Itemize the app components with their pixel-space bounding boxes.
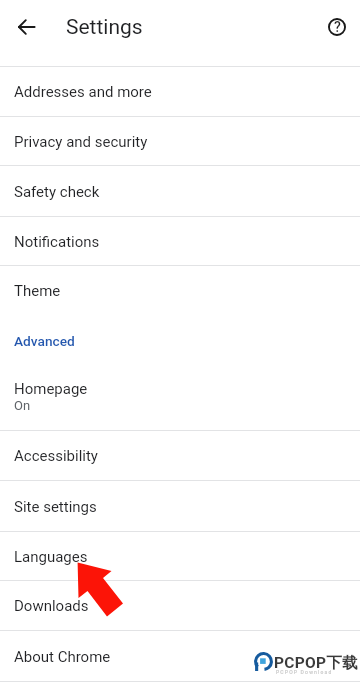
button[interactable]: Homepage <box>0 366 360 431</box>
button[interactable]: Privacy and security <box>0 117 360 166</box>
button[interactable]: Safety check <box>0 166 360 217</box>
staticText: Site settings <box>14 498 97 516</box>
staticText: Addresses and more <box>14 83 152 101</box>
button[interactable]: Addresses and more <box>0 67 360 117</box>
button[interactable]: Downloads <box>0 581 360 631</box>
staticText: PCPOP下载 <box>274 653 358 673</box>
button[interactable]: Notifications <box>0 217 360 266</box>
button[interactable]: Languages <box>0 532 360 581</box>
staticText: Downloads <box>14 597 89 615</box>
staticText: Privacy and security <box>14 133 148 151</box>
staticText: Languages <box>14 548 88 566</box>
button[interactable]: Site settings <box>0 481 360 532</box>
staticText: ? <box>334 19 341 35</box>
button[interactable]: Help <box>319 9 355 45</box>
staticText: Settings <box>66 15 143 40</box>
staticText: Theme <box>14 282 61 300</box>
staticText: On <box>14 398 31 413</box>
button[interactable]: Accessibility <box>0 431 360 481</box>
staticText: Accessibility <box>14 447 98 465</box>
staticText: Safety check <box>14 183 100 201</box>
button[interactable]: Theme <box>0 266 360 316</box>
staticText: About Chrome <box>14 648 111 666</box>
staticText: Notifications <box>14 233 100 251</box>
staticText: Homepage <box>14 380 88 398</box>
staticText: Advanced <box>14 333 75 349</box>
button[interactable]: Back <box>10 9 46 45</box>
staticText: PCPOP Download <box>276 669 333 675</box>
button[interactable]: About Chrome <box>0 631 360 682</box>
